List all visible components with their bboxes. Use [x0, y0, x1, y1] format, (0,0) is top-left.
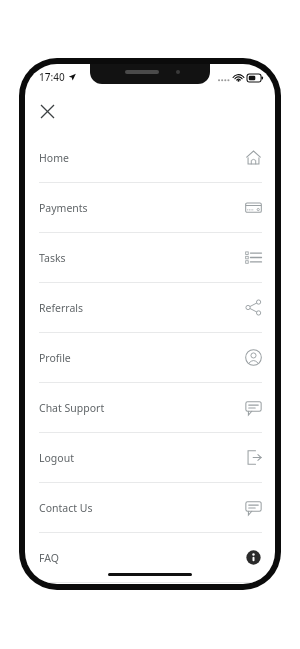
- staticText: Contact Us: [39, 501, 93, 515]
- button[interactable]: Referrals: [25, 283, 275, 333]
- staticText: Payments: [39, 201, 88, 215]
- button[interactable]: Close: [34, 98, 60, 124]
- staticText: Tasks: [39, 251, 66, 265]
- staticText: Referrals: [39, 301, 84, 315]
- button[interactable]: Payments: [25, 183, 275, 233]
- staticText: Home: [39, 151, 69, 165]
- staticText: Logout: [39, 451, 74, 465]
- staticText: FAQ: [39, 551, 59, 565]
- button[interactable]: Home: [25, 133, 275, 183]
- staticText: Chat Support: [39, 401, 105, 415]
- button[interactable]: FAQ: [25, 533, 275, 583]
- button[interactable]: Chat Support: [25, 383, 275, 433]
- button[interactable]: Contact Us: [25, 483, 275, 533]
- button[interactable]: Logout: [25, 433, 275, 483]
- button[interactable]: Profile: [25, 333, 275, 383]
- button[interactable]: Tasks: [25, 233, 275, 283]
- staticText: Profile: [39, 351, 71, 365]
- staticText: 17:40: [39, 70, 65, 84]
